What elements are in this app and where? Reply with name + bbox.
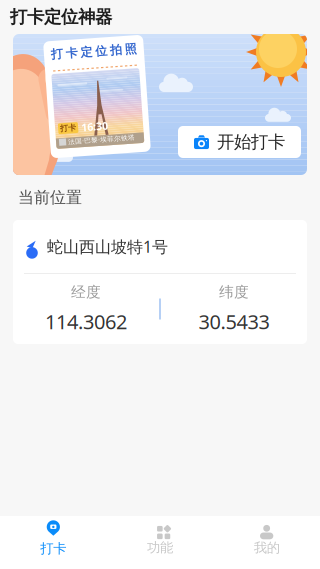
staticText: 纬度 — [219, 283, 249, 301]
button[interactable]: 功能 — [107, 516, 213, 561]
staticText: 30.5433 — [198, 308, 269, 335]
staticText: 114.3062 — [45, 308, 127, 335]
staticText: 经度 — [71, 283, 101, 301]
staticText: 16:30 — [79, 119, 106, 133]
staticText: 打卡 — [40, 540, 66, 557]
staticText: 开始打卡 — [217, 131, 285, 153]
staticText: 功能 — [147, 539, 173, 556]
staticText: 打卡定位拍照 — [54, 44, 140, 59]
button[interactable]: 我的 — [213, 516, 320, 561]
staticText: 法国·巴黎·埃菲尔铁塔 — [65, 135, 132, 144]
staticText: 打卡定位神器 — [10, 6, 112, 28]
button[interactable]: 打卡 — [0, 516, 107, 561]
staticText: 当前位置 — [18, 188, 82, 207]
staticText: 我的 — [254, 539, 280, 556]
staticText: 打卡 — [58, 121, 74, 131]
staticText: 蛇山西山坡特1号 — [47, 236, 168, 257]
button[interactable]: 开始打卡 — [178, 126, 301, 158]
